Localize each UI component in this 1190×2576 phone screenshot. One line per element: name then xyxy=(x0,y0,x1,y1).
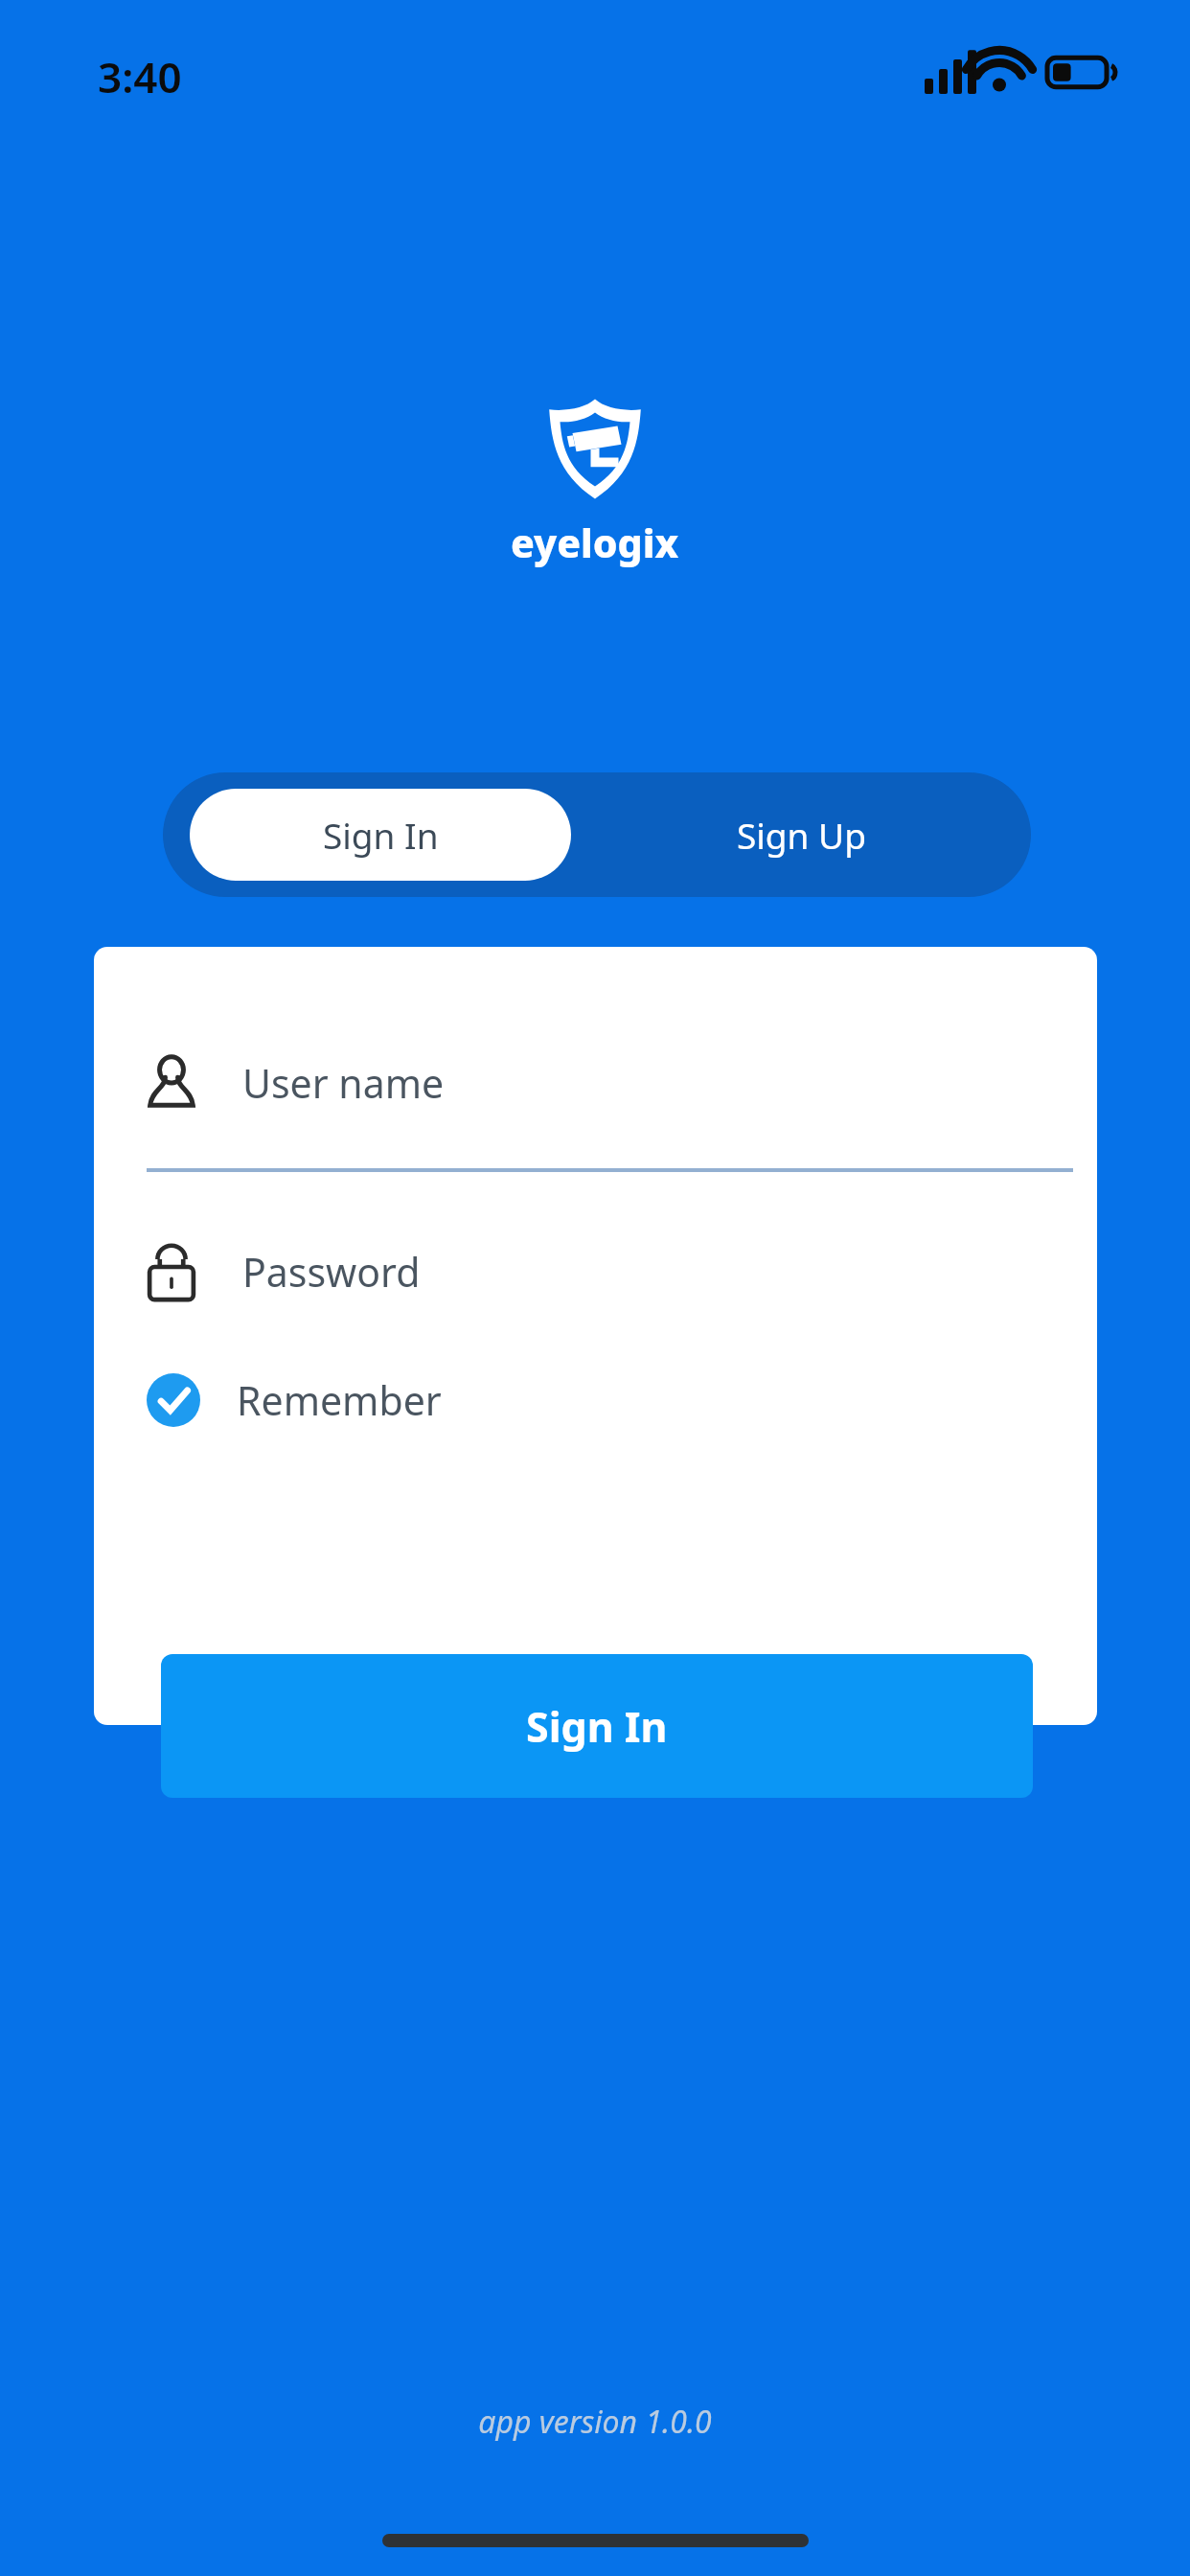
button[interactable]: Sign In xyxy=(190,789,571,881)
staticText: Remember xyxy=(237,1373,442,1427)
other: Remember me checkbox, checked xyxy=(147,1373,200,1427)
button[interactable]: User name xyxy=(147,1030,1044,1136)
staticText: 3:40 xyxy=(98,48,182,105)
other: User name xyxy=(147,1055,196,1111)
staticText: Sign Up xyxy=(737,811,866,859)
button[interactable]: Sign In xyxy=(161,1654,1033,1798)
staticText: app version 1.0.0 xyxy=(0,2401,1190,2443)
staticText: Sign In xyxy=(323,811,439,859)
staticText: Password xyxy=(242,1245,421,1299)
staticText: User name xyxy=(242,1056,445,1110)
staticText: Sign In xyxy=(526,1698,668,1755)
button[interactable]: Sign Up xyxy=(571,789,1031,881)
button[interactable]: Remember me checkbox, checked xyxy=(147,1359,442,1441)
staticText: eyelogix xyxy=(511,516,679,569)
other: Password xyxy=(147,1242,196,1301)
button[interactable]: Password xyxy=(147,1220,1044,1323)
